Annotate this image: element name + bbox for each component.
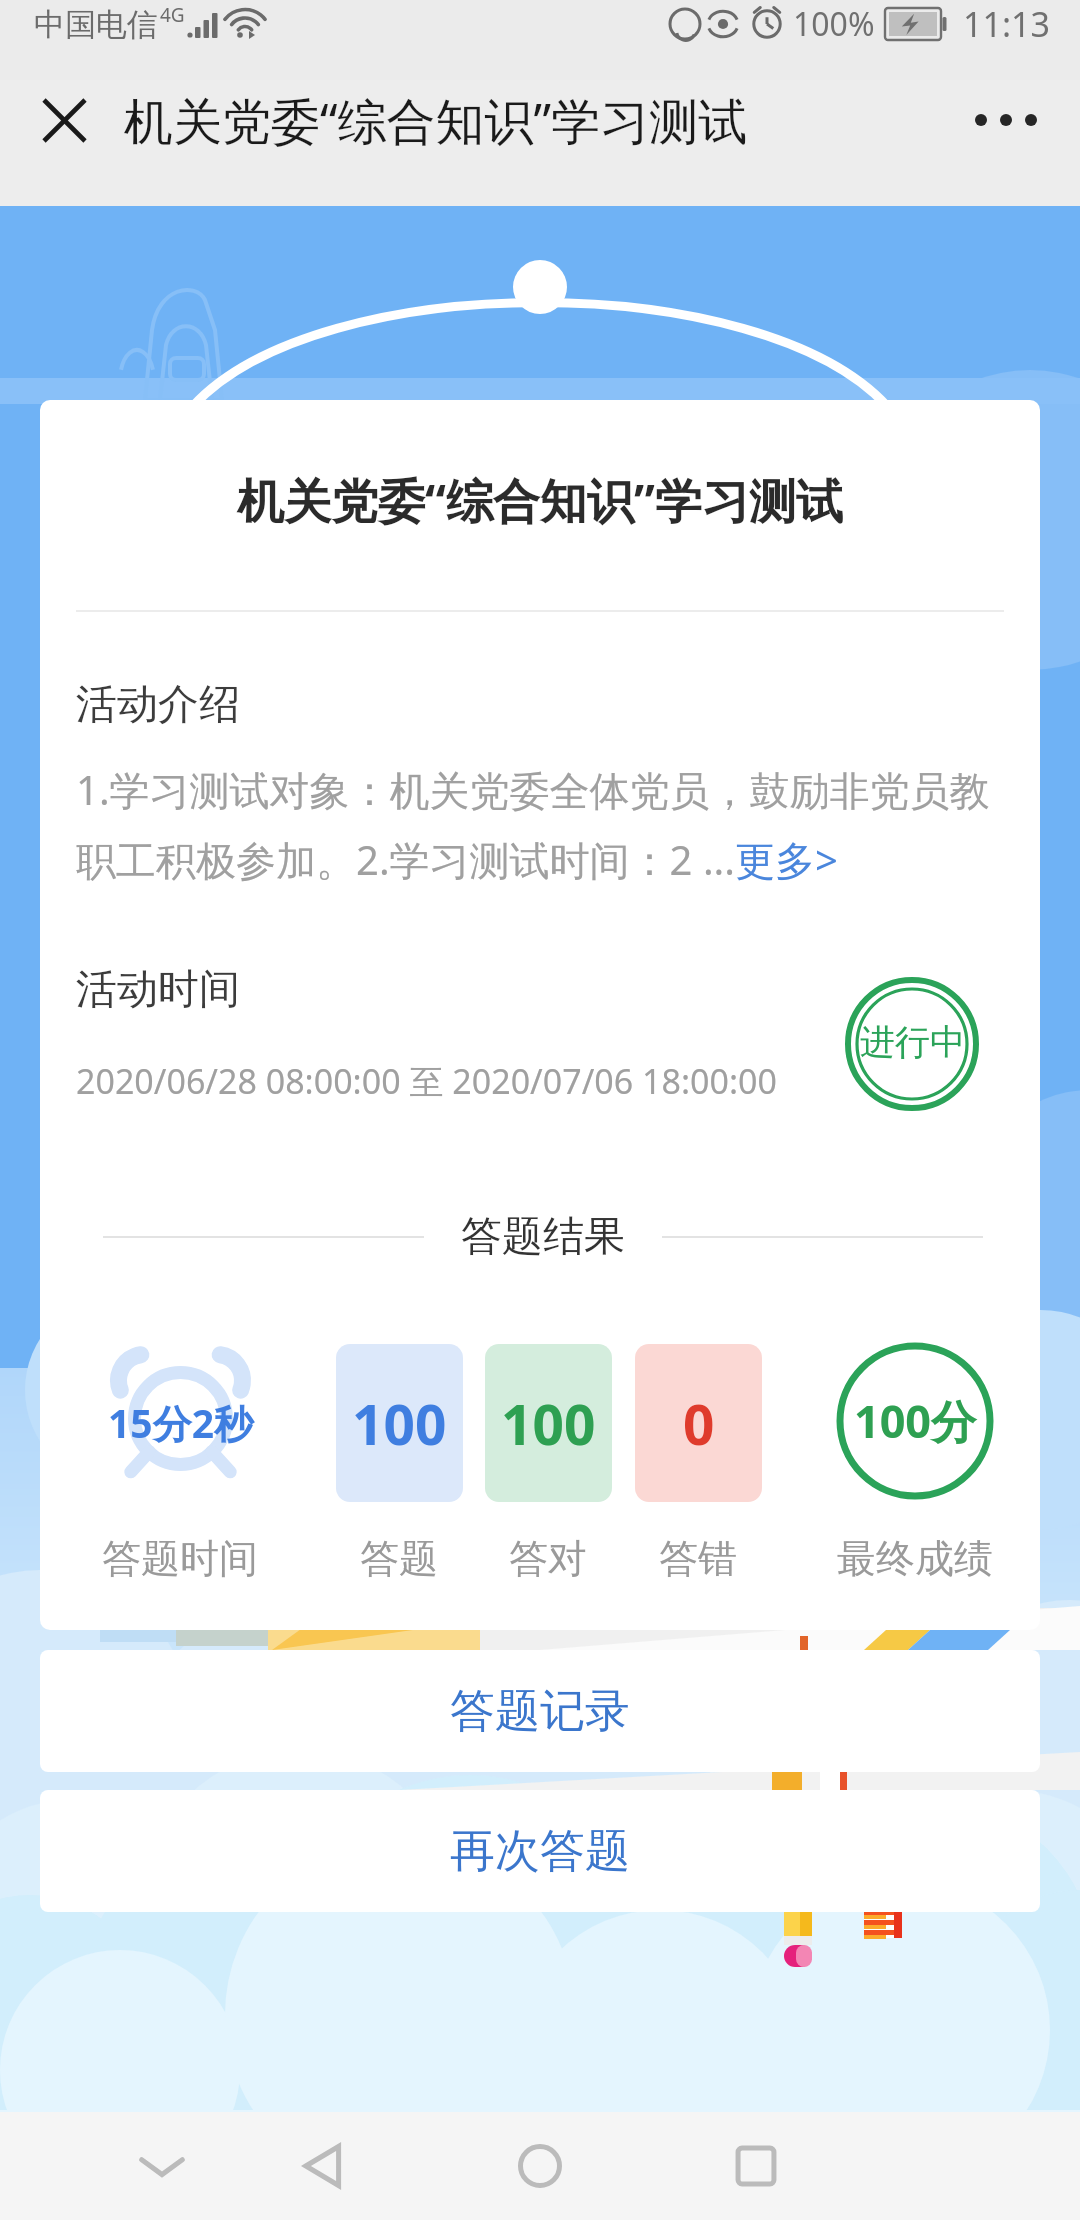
staticText: 答题记录 — [450, 1683, 630, 1740]
staticText: 活动介绍 — [76, 679, 240, 731]
staticText: 2020/06/28 08:00:00 至 2020/07/06 18:00:0… — [76, 1058, 777, 1104]
staticText: 100 — [352, 1386, 447, 1461]
staticText: 答题 — [360, 1534, 438, 1583]
button[interactable]: Hide keyboard — [112, 2112, 212, 2220]
staticText: 100 — [501, 1386, 596, 1461]
button[interactable]: Close — [26, 82, 102, 158]
staticText: 进行中 — [860, 1020, 965, 1064]
staticText: 答题时间 — [102, 1534, 258, 1583]
staticText: 答对 — [509, 1534, 587, 1583]
staticText: 机关党委“综合知识”学习测试 — [124, 87, 748, 154]
button[interactable]: 再次答题 — [40, 1790, 1040, 1912]
staticText: 15分2秒 — [108, 1396, 253, 1449]
staticText: 答错 — [659, 1534, 737, 1583]
staticText: 中国电信 — [34, 5, 158, 44]
staticText: 100分 — [835, 1390, 995, 1451]
staticText: 机关党委“综合知识”学习测试 — [40, 468, 1040, 532]
staticText: 再次答题 — [450, 1823, 630, 1880]
staticText: 1.学习测试对象：机关党委全体党员，鼓励非党员教职工积极参加。2.学习测试时间：… — [76, 762, 1006, 887]
staticText: 最终成绩 — [837, 1534, 993, 1583]
button[interactable]: 答题记录 — [40, 1650, 1040, 1772]
staticText: 11:13 — [963, 1, 1050, 47]
staticText: 活动时间 — [76, 964, 240, 1016]
staticText: 4G — [160, 2, 185, 28]
staticText: 100% — [793, 2, 875, 46]
staticText: 答题结果 — [461, 1211, 625, 1263]
staticText: 0 — [683, 1386, 715, 1461]
button[interactable]: More options — [966, 80, 1046, 160]
button[interactable]: Home — [490, 2112, 590, 2220]
button[interactable]: Recents — [706, 2112, 806, 2220]
button[interactable]: Back — [273, 2112, 373, 2220]
